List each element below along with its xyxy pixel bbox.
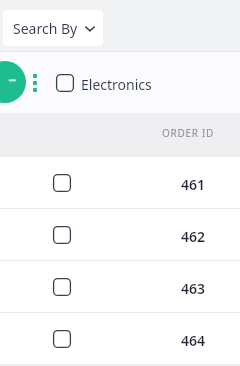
staticText: 463 (140, 279, 205, 298)
button[interactable]: Select order 461 (51, 172, 73, 194)
button[interactable]: Search By (3, 10, 103, 46)
button[interactable]: Select order 462 (0, 209, 240, 260)
button[interactable]: Select order 463 (0, 261, 240, 312)
button[interactable]: Select Electronics (54, 72, 76, 94)
staticText: Electronics (81, 75, 152, 94)
button[interactable]: Select order 463 (51, 276, 73, 298)
staticText: 461 (140, 175, 205, 194)
staticText: 464 (140, 331, 205, 350)
staticText: Search By (13, 19, 78, 38)
button[interactable]: More options (29, 74, 41, 96)
button[interactable]: Select order 464 (51, 328, 73, 350)
button[interactable]: Select order 462 (51, 224, 73, 246)
button[interactable]: Select order 461 (0, 157, 240, 208)
button[interactable]: Select order 464 (0, 313, 240, 364)
button[interactable]: Collapse group (0, 61, 26, 103)
staticText: 462 (140, 227, 205, 246)
staticText: ORDER ID (152, 126, 214, 140)
